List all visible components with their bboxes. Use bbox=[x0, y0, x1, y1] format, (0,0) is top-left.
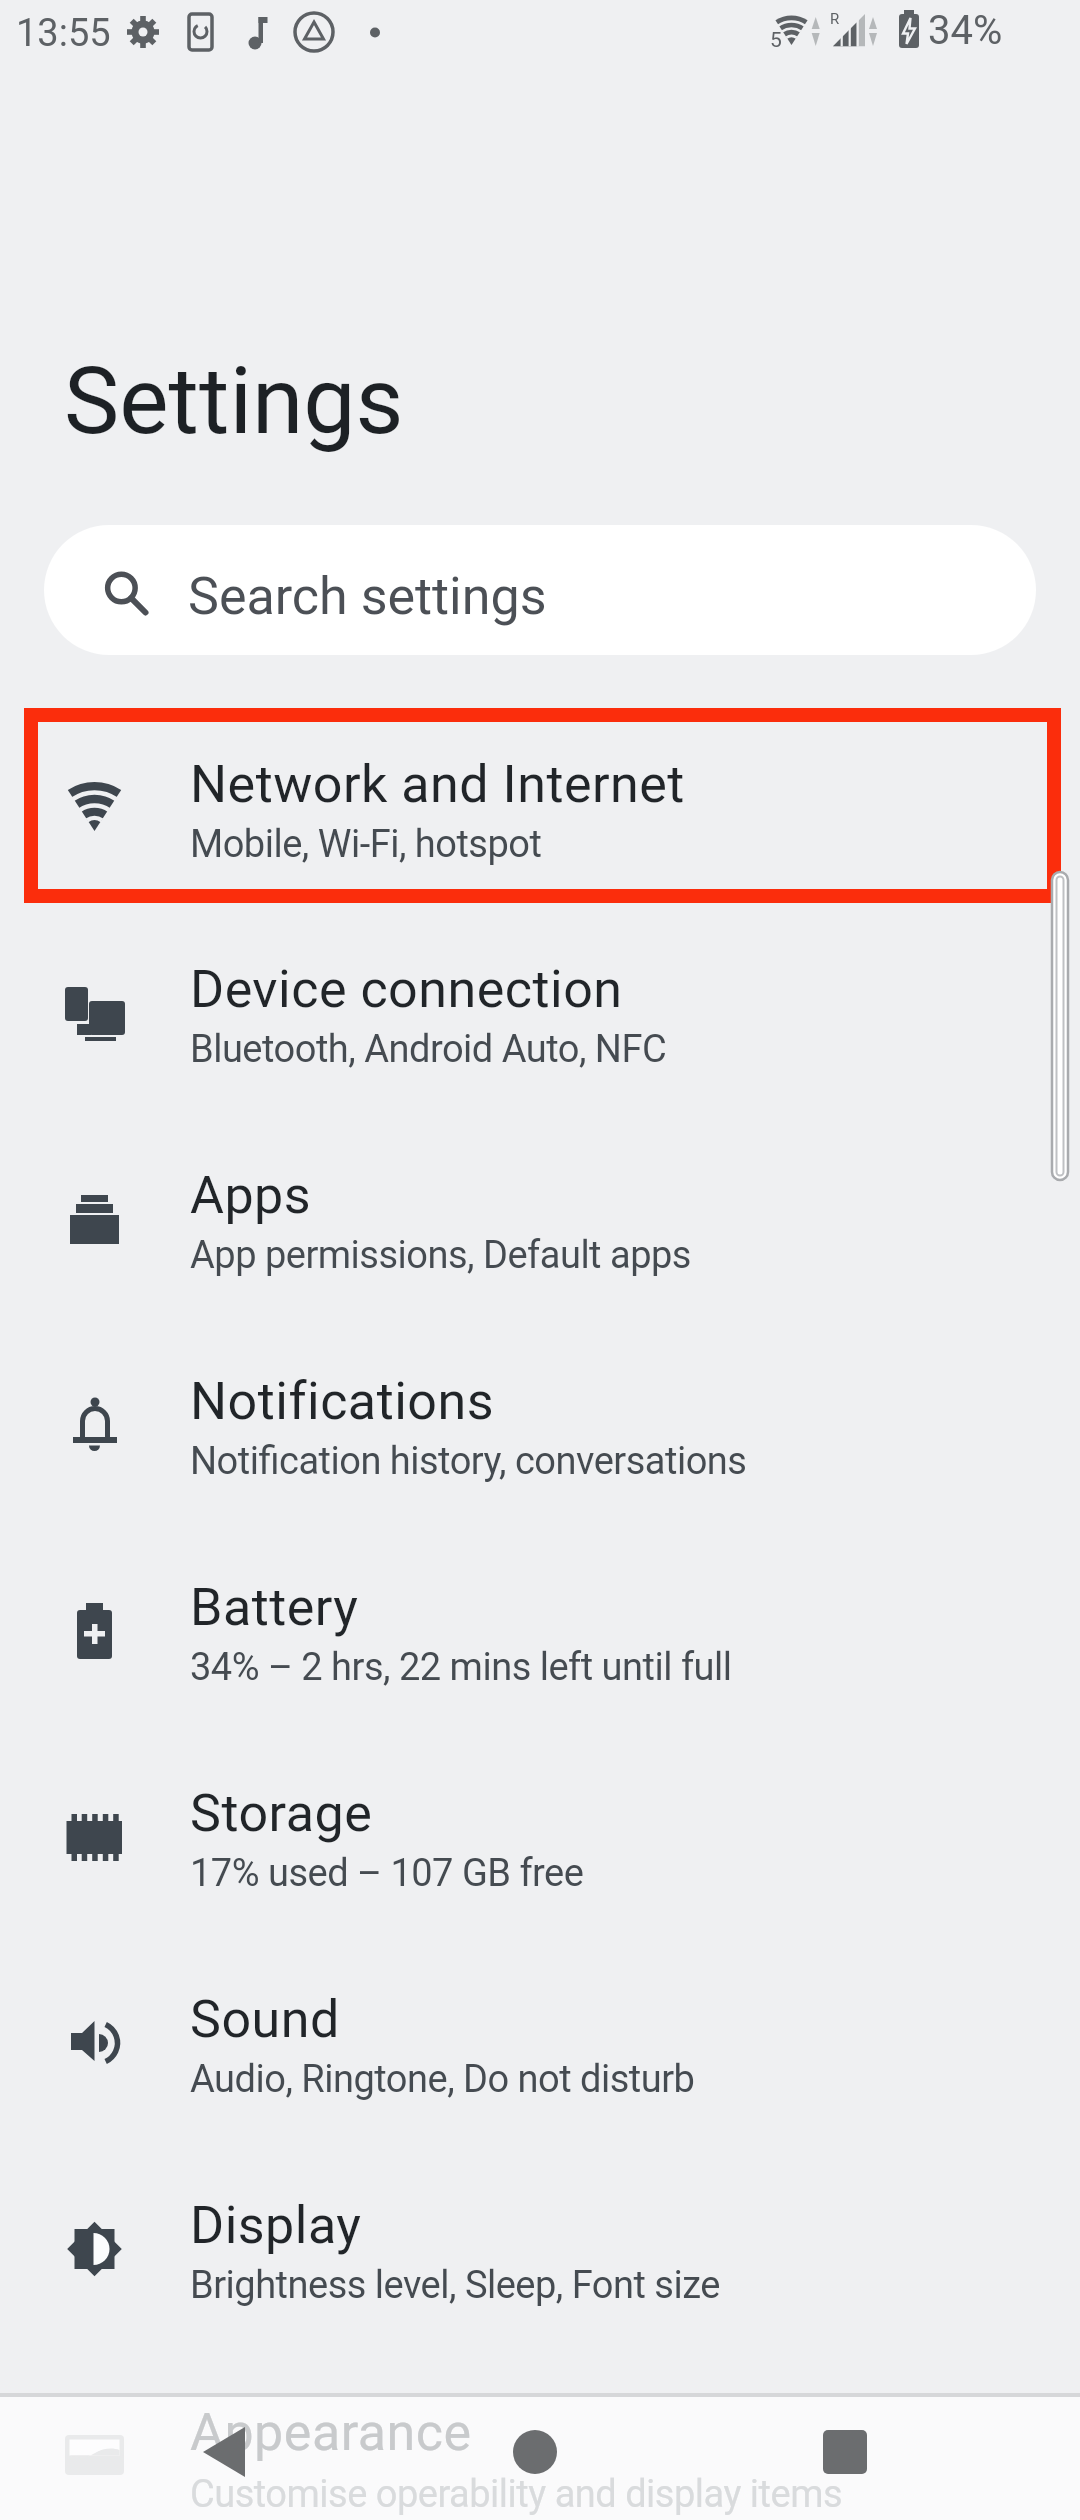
button[interactable]: Display bbox=[0, 2141, 1080, 2347]
staticText: Device connection bbox=[190, 959, 623, 1020]
staticText: Search settings bbox=[188, 566, 547, 627]
staticText: Settings bbox=[64, 347, 404, 456]
staticText: Appearance bbox=[190, 2402, 472, 2463]
button[interactable]: Device connection bbox=[0, 905, 1080, 1111]
staticText: Customise operability and display items bbox=[190, 2472, 843, 2517]
staticText: App permissions, Default apps bbox=[190, 1233, 691, 1278]
staticText: Network and Internet bbox=[190, 754, 685, 815]
staticText: Audio, Ringtone, Do not disturb bbox=[190, 2057, 695, 2102]
staticText: 34% bbox=[928, 7, 1003, 54]
staticText: Battery bbox=[190, 1577, 359, 1638]
staticText: Storage bbox=[190, 1783, 373, 1844]
staticText: 17% used – 107 GB free bbox=[190, 1851, 584, 1896]
button[interactable]: Network and Internet bbox=[0, 700, 1080, 906]
staticText: Mobile, Wi-Fi, hotspot bbox=[190, 822, 542, 867]
staticText: 13:55 bbox=[16, 11, 111, 56]
button[interactable]: Search settings bbox=[44, 525, 1036, 655]
staticText: Bluetooth, Android Auto, NFC bbox=[190, 1027, 667, 1072]
staticText: Sound bbox=[190, 1989, 340, 2050]
staticText: 34% – 2 hrs, 22 mins left until full bbox=[190, 1645, 732, 1690]
staticText: Display bbox=[190, 2195, 362, 2256]
button[interactable]: Storage bbox=[0, 1729, 1080, 1935]
button[interactable]: Notifications bbox=[0, 1317, 1080, 1523]
button[interactable] bbox=[772, 2400, 917, 2510]
button[interactable]: Sound bbox=[0, 1935, 1080, 2141]
staticText: Apps bbox=[190, 1165, 312, 1226]
button[interactable] bbox=[150, 2400, 295, 2510]
staticText: Brightness level, Sleep, Font size bbox=[190, 2263, 720, 2308]
staticText: 5 bbox=[770, 28, 782, 53]
staticText: R bbox=[830, 10, 840, 28]
button[interactable]: Battery bbox=[0, 1523, 1080, 1729]
staticText: Notification history, conversations bbox=[190, 1439, 747, 1484]
staticText: Notifications bbox=[190, 1371, 495, 1432]
button[interactable] bbox=[462, 2400, 607, 2510]
button[interactable]: Apps bbox=[0, 1111, 1080, 1317]
